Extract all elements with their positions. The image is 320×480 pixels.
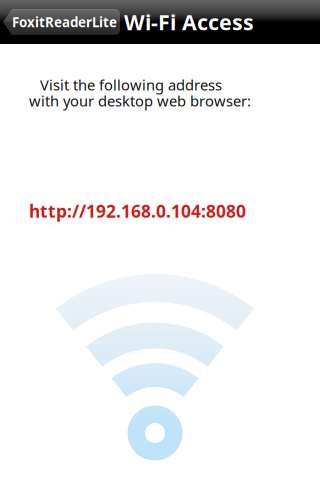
staticText: with your desktop web browser:	[29, 91, 251, 110]
button[interactable]: http://192.168.0.104:8080	[0, 199, 246, 222]
staticText: Wi-Fi Access	[124, 8, 254, 36]
staticText: http://192.168.0.104:8080	[29, 199, 246, 222]
button[interactable]: FoxitReaderLite	[3, 9, 120, 35]
staticText: Visit the following address	[40, 75, 222, 94]
staticText: FoxitReaderLite	[12, 13, 117, 31]
